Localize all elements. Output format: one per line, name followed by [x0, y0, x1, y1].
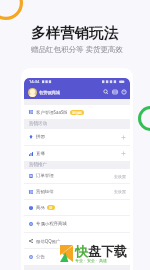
- staticText: 快: [75, 243, 88, 259]
- button[interactable]: 专属小程序商城: [24, 216, 130, 232]
- staticText: 订单管理: [36, 173, 54, 179]
- staticText: 商品: [36, 205, 45, 211]
- staticText: 有赞微商城: [39, 90, 60, 95]
- staticText: ·: [83, 258, 87, 263]
- button[interactable]: 订单管理: [24, 169, 130, 183]
- button[interactable]: 微信QQ推广: [24, 233, 130, 248]
- staticText: 公告: [36, 254, 45, 260]
- staticText: 新: [49, 206, 53, 210]
- staticText: 高速: [99, 258, 107, 263]
- staticText: 安全: [87, 258, 95, 263]
- staticText: 营销活动: [29, 121, 47, 127]
- button[interactable]: Search: [103, 89, 109, 95]
- staticText: 盘下载: [88, 243, 127, 259]
- button[interactable]: 公告: [24, 249, 130, 265]
- staticText: 拼团: [36, 134, 45, 140]
- button[interactable]: Profile: [28, 88, 37, 97]
- button[interactable]: 拼团: [24, 129, 130, 145]
- staticText: ·: [95, 258, 99, 263]
- staticText: 去设置: [114, 189, 126, 194]
- button[interactable]: Scan: [112, 89, 118, 95]
- staticText: 14:34: [29, 79, 40, 84]
- staticText: 营销短信: [36, 189, 54, 195]
- staticText: 直播: [36, 151, 45, 157]
- button[interactable]: More: [121, 89, 127, 95]
- staticText: 专业: [75, 258, 83, 263]
- button[interactable]: 营销短信: [24, 184, 130, 199]
- staticText: 专属小程序商城: [36, 221, 67, 227]
- staticText: 去设置: [114, 174, 126, 179]
- staticText: 新功能: [72, 111, 82, 115]
- button[interactable]: 商品: [24, 200, 130, 215]
- staticText: 微信QQ推广: [36, 238, 61, 244]
- staticText: 营销推广: [29, 162, 47, 168]
- button[interactable]: 客户管理SaaS版: [24, 105, 130, 119]
- button[interactable]: 直播: [24, 146, 130, 161]
- staticText: 多样营销玩法: [31, 24, 118, 42]
- staticText: 赠品红包积分等 卖货更高效: [31, 44, 123, 54]
- staticText: 客户管理SaaS版: [36, 109, 68, 115]
